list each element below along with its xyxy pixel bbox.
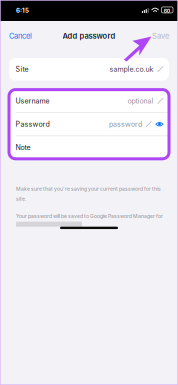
button[interactable]: Site bbox=[9, 58, 169, 81]
staticText: Your password will be saved to Google Pa… bbox=[16, 213, 163, 219]
staticText: sample.co.uk bbox=[109, 65, 153, 73]
button[interactable]: Password bbox=[9, 113, 169, 135]
staticText: Add password bbox=[62, 31, 115, 41]
staticText: Save bbox=[152, 31, 169, 40]
staticText: optional bbox=[127, 97, 153, 105]
staticText: password bbox=[109, 120, 142, 128]
staticText: Make sure that you're saving your curren… bbox=[16, 186, 161, 202]
button[interactable]: Username bbox=[9, 90, 169, 112]
staticText: Username bbox=[15, 97, 49, 105]
staticText: Note bbox=[15, 143, 30, 152]
button[interactable]: Note bbox=[9, 136, 169, 159]
button[interactable]: Cancel bbox=[8, 27, 33, 44]
staticText: Password bbox=[15, 120, 49, 128]
staticText: 60 bbox=[164, 8, 170, 14]
button[interactable]: Save bbox=[151, 27, 170, 44]
staticText: Cancel bbox=[9, 31, 32, 40]
staticText: Site bbox=[15, 65, 28, 73]
staticText: 6:15 bbox=[16, 7, 29, 14]
